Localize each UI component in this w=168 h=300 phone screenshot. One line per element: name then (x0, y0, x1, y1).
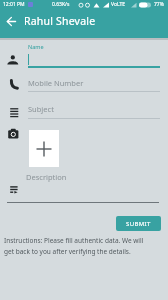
staticText: Instructions: Please fill authentic data… (4, 236, 144, 245)
staticText: Name (28, 43, 44, 50)
button[interactable]: Name (0, 42, 168, 68)
staticText: Mobile Number (28, 78, 84, 88)
button[interactable]: Mobile Number (0, 77, 168, 93)
staticText: Rahul Shevale (24, 14, 96, 28)
button[interactable]: Subject (0, 103, 168, 120)
staticText: 0.63K/s (52, 1, 70, 8)
staticText: Description (26, 172, 67, 182)
staticText: SUBMIT (126, 220, 151, 228)
button[interactable]: SUBMIT (116, 216, 161, 231)
staticText: get back to you after verifying the deta… (4, 247, 131, 256)
staticText: Subject (28, 104, 54, 114)
button[interactable]: Description (0, 172, 168, 204)
staticText: 77% (154, 1, 164, 8)
button[interactable] (3, 13, 19, 30)
staticText: VoLTE (111, 1, 126, 8)
button[interactable] (29, 130, 59, 167)
staticText: 12:01 PM (3, 1, 25, 8)
